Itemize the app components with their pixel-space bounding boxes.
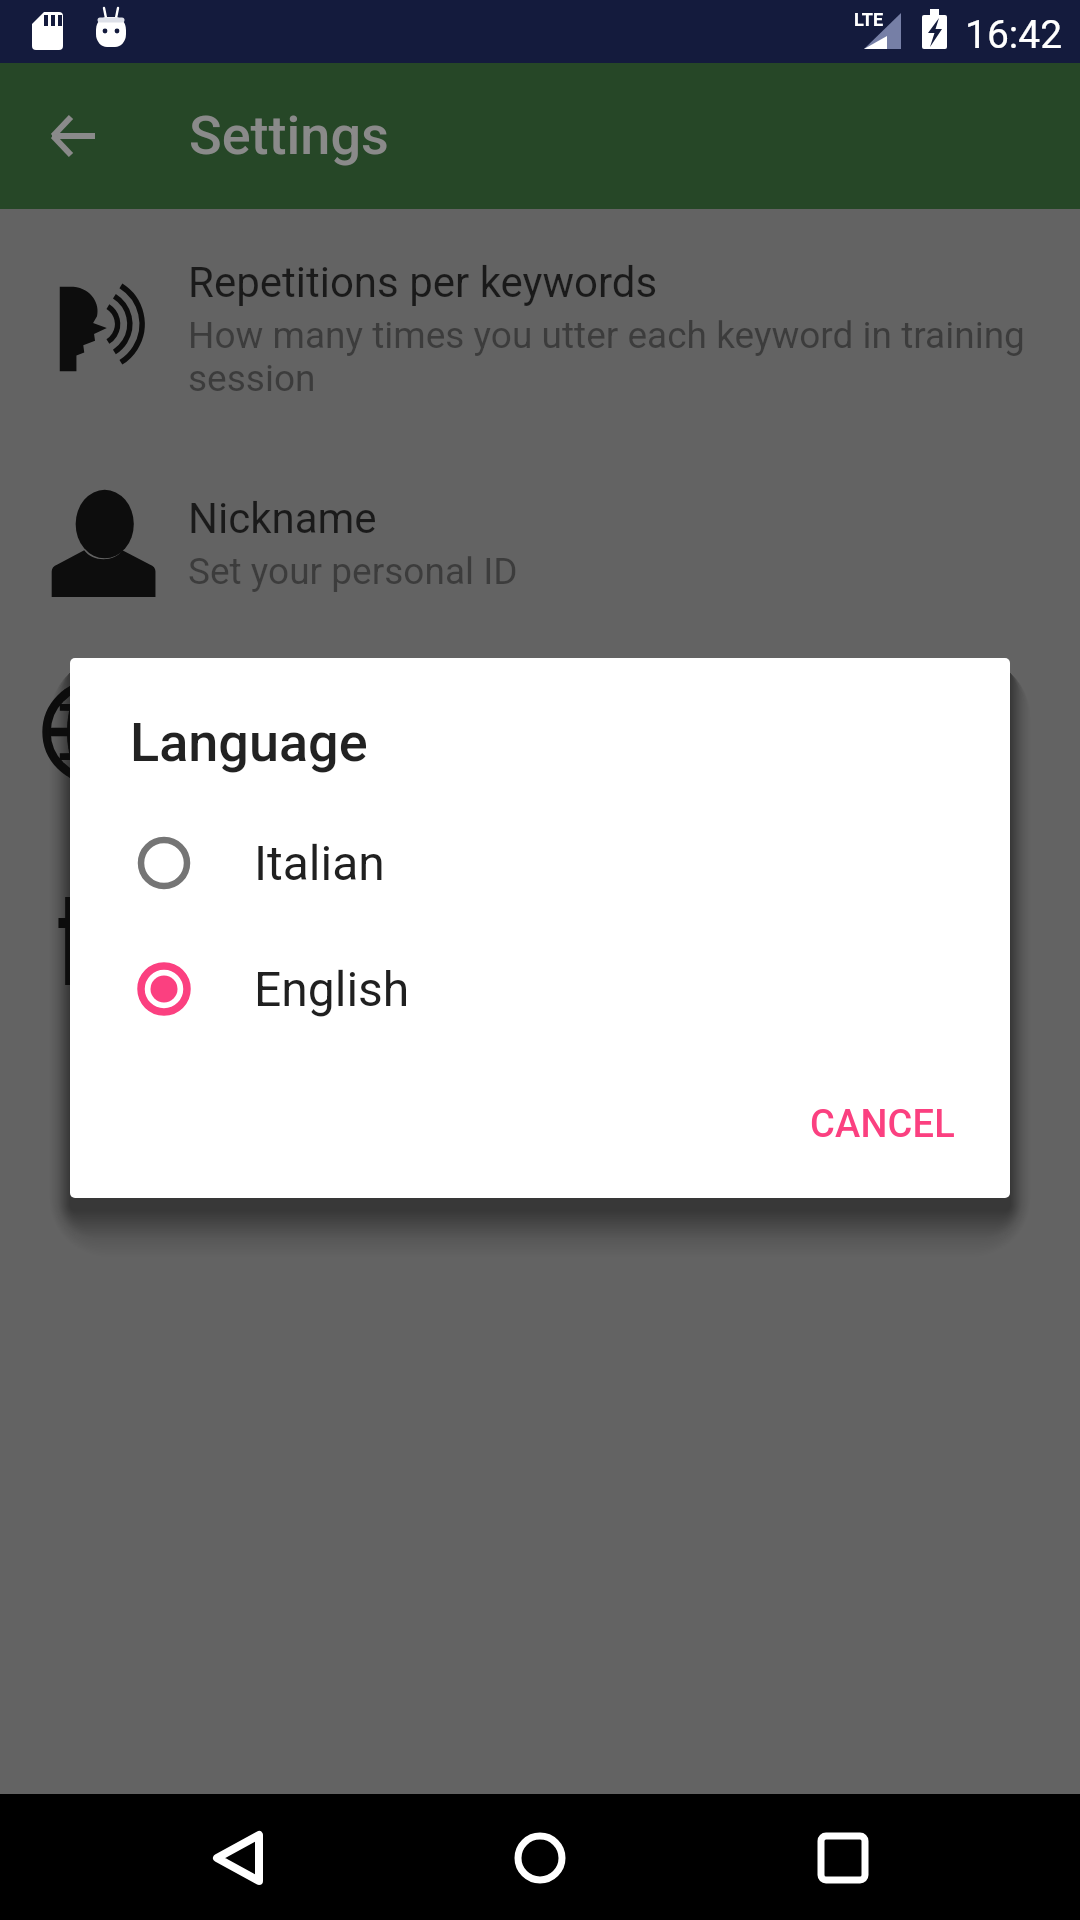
staticText: Choose the app language xyxy=(188,745,606,788)
staticText: Nickname xyxy=(188,494,377,543)
button[interactable]: Language xyxy=(0,640,1080,825)
staticText: Language xyxy=(188,689,373,738)
staticText: CANCEL xyxy=(810,1102,955,1147)
staticText: Set your personal ID xyxy=(188,550,518,593)
button[interactable]: Back xyxy=(182,1802,292,1912)
staticText: How many times you utter each keyword in… xyxy=(188,314,1050,400)
button[interactable]: Repetitions per keywords xyxy=(0,209,1080,422)
button[interactable]: Nickname xyxy=(0,445,1080,630)
staticText: Italian xyxy=(254,835,385,891)
button[interactable]: Italian xyxy=(70,800,1010,926)
button[interactable]: Navigate up xyxy=(24,88,120,184)
button[interactable]: Threshold xyxy=(0,835,1080,1020)
button[interactable]: Recent apps xyxy=(788,1802,898,1912)
staticText: English xyxy=(254,961,410,1017)
staticText: 16:42 xyxy=(965,12,1063,58)
button[interactable]: English xyxy=(70,926,1010,1052)
staticText: Repetitions per keywords xyxy=(188,258,658,307)
staticText: LTE xyxy=(854,9,884,30)
button[interactable]: Home xyxy=(485,1802,595,1912)
staticText: Settings xyxy=(189,104,389,167)
staticText: Language xyxy=(130,711,368,774)
button[interactable]: CANCEL xyxy=(782,1082,983,1167)
staticText: Recognition sensitivity xyxy=(188,940,558,983)
